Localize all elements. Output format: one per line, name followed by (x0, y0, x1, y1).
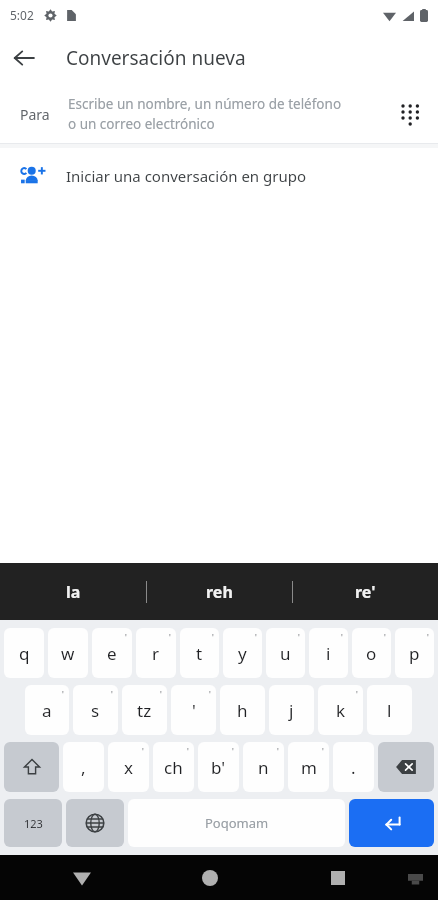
button[interactable]: m (288, 742, 329, 792)
staticText: ' (356, 689, 358, 700)
button[interactable]: j (269, 685, 314, 735)
staticText: o (366, 642, 377, 665)
staticText: o un correo electrónico (68, 115, 215, 133)
button[interactable]: k (318, 685, 363, 735)
staticText: ' (192, 699, 196, 722)
button[interactable]: u (266, 628, 305, 678)
button[interactable]: Change keyboard language (66, 799, 124, 847)
button[interactable]: 123 (4, 799, 62, 847)
button[interactable]: r (136, 628, 176, 678)
button[interactable]: s (73, 685, 118, 735)
staticText: e (107, 642, 117, 665)
button[interactable]: Poqomam (128, 799, 345, 847)
button[interactable]: Iniciar una conversación en grupo (0, 148, 438, 204)
button[interactable]: Escribe un nombre, un número de teléfono (68, 95, 386, 133)
staticText: p (409, 642, 420, 665)
staticText: , (81, 756, 86, 779)
staticText: ' (160, 689, 162, 700)
button[interactable]: Enter (349, 799, 434, 847)
staticText: 5:02 (10, 7, 34, 23)
staticText: n (258, 756, 269, 779)
staticText: Iniciar una conversación en grupo (66, 166, 307, 186)
button[interactable]: Back (0, 34, 48, 82)
staticText: re' (355, 581, 376, 603)
staticText: ' (111, 689, 113, 700)
staticText: ' (384, 632, 386, 643)
staticText: s (91, 699, 100, 722)
staticText: ' (209, 689, 211, 700)
button[interactable]: . (333, 742, 374, 792)
button[interactable]: Switch keyboard (396, 859, 434, 897)
staticText: ' (232, 746, 234, 757)
staticText: l (387, 699, 392, 722)
staticText: ' (341, 632, 343, 643)
button[interactable]: ' (171, 685, 216, 735)
staticText: ' (322, 746, 324, 757)
staticText: Para (20, 105, 50, 124)
button[interactable]: Backspace (378, 742, 434, 792)
staticText: ' (187, 746, 189, 757)
staticText: ch (164, 756, 183, 779)
staticText: 123 (24, 816, 43, 831)
staticText: k (336, 699, 346, 722)
button[interactable]: q (4, 628, 44, 678)
staticText: i (326, 642, 331, 665)
button[interactable]: t (180, 628, 219, 678)
button[interactable]: i (309, 628, 348, 678)
button[interactable]: o (352, 628, 391, 678)
staticText: ' (298, 632, 300, 643)
button[interactable]: p (395, 628, 434, 678)
button[interactable]: Dialpad (386, 90, 434, 138)
staticText: j (289, 699, 294, 722)
staticText: m (301, 756, 317, 779)
staticText: Conversación nueva (66, 45, 246, 71)
staticText: ' (212, 632, 214, 643)
button[interactable]: b' (198, 742, 239, 792)
button[interactable]: n (243, 742, 284, 792)
staticText: la (66, 581, 81, 603)
staticText: b' (211, 756, 226, 779)
staticText: y (238, 642, 247, 665)
button[interactable]: y (223, 628, 262, 678)
button[interactable]: x (108, 742, 149, 792)
staticText: ' (142, 746, 144, 757)
button[interactable]: reh (147, 563, 292, 620)
staticText: ' (427, 632, 429, 643)
button[interactable]: tz (122, 685, 167, 735)
staticText: Poqomam (205, 814, 269, 832)
staticText: ' (169, 632, 171, 643)
staticText: ' (125, 632, 127, 643)
staticText: x (124, 756, 133, 779)
staticText: w (61, 642, 75, 665)
button[interactable]: h (220, 685, 265, 735)
staticText: ' (277, 746, 279, 757)
button[interactable]: w (48, 628, 88, 678)
staticText: u (280, 642, 291, 665)
button[interactable]: Recents (316, 856, 360, 900)
staticText: t (196, 642, 203, 665)
button[interactable]: Home (188, 856, 232, 900)
button[interactable]: Back (60, 856, 104, 900)
button[interactable]: l (367, 685, 412, 735)
staticText: ' (255, 632, 257, 643)
button[interactable]: , (63, 742, 104, 792)
button[interactable]: ch (153, 742, 194, 792)
button[interactable]: re' (293, 563, 438, 620)
staticText: h (237, 699, 248, 722)
staticText: tz (137, 699, 152, 722)
button[interactable]: la (0, 563, 146, 620)
button[interactable]: e (92, 628, 132, 678)
staticText: q (19, 642, 30, 665)
button[interactable]: a (25, 685, 69, 735)
staticText: reh (206, 581, 233, 603)
staticText: a (42, 699, 52, 722)
staticText: . (351, 756, 356, 779)
staticText: ' (62, 689, 64, 700)
button[interactable]: Shift (4, 742, 59, 792)
staticText: r (152, 642, 160, 665)
staticText: Escribe un nombre, un número de teléfono (68, 95, 342, 113)
